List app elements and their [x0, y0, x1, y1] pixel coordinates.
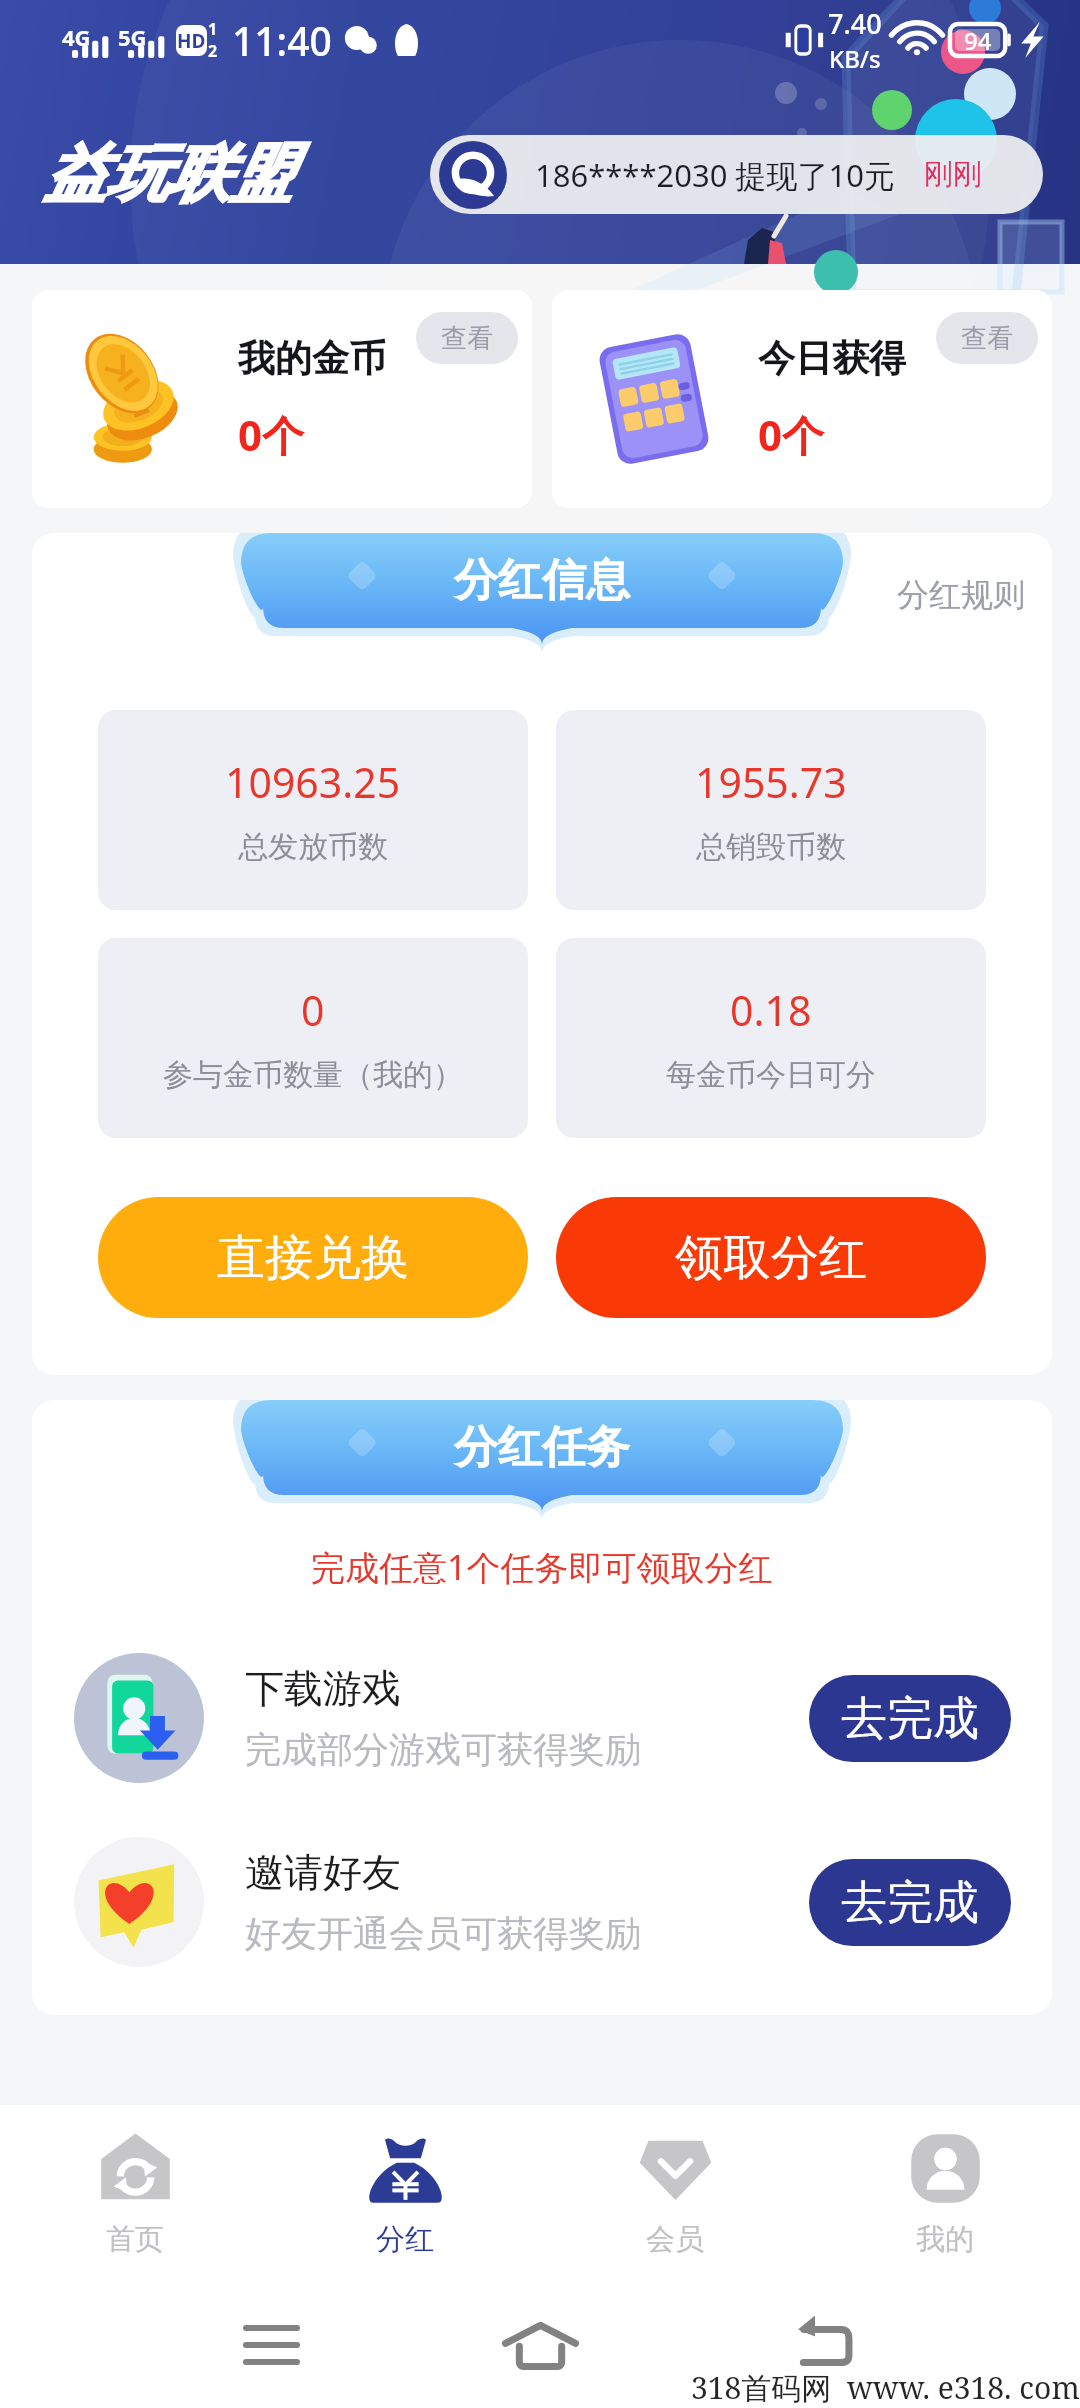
- staticText: 每金币今日可分: [666, 1056, 876, 1094]
- staticText: 去完成: [841, 1690, 979, 1748]
- staticText: 今日获得: [758, 335, 906, 382]
- button[interactable]: 今日获得: [552, 290, 1052, 508]
- staticText: 0个: [758, 406, 825, 463]
- staticText: 总销毁币数: [696, 828, 846, 866]
- other: Recent apps: [246, 2325, 297, 2365]
- staticText: 我的: [916, 2221, 974, 2258]
- staticText: 完成部分游戏可获得奖励: [245, 1727, 641, 1772]
- staticText: 0: [301, 982, 325, 1038]
- button[interactable]: 会员: [540, 2105, 810, 2280]
- staticText: 领取分红: [675, 1228, 867, 1288]
- staticText: 首页: [106, 2221, 164, 2258]
- staticText: 刚刚: [924, 156, 982, 193]
- button[interactable]: 186****2030 提现了10元: [430, 135, 1043, 214]
- staticText: 分红: [376, 2221, 434, 2258]
- button[interactable]: 领取分红: [556, 1197, 986, 1318]
- staticText: 0.18: [730, 982, 812, 1038]
- staticText: 我的金币: [238, 335, 386, 382]
- staticText: 分红任务: [454, 1420, 630, 1475]
- staticText: 分红规则: [897, 575, 1025, 615]
- button[interactable]: 分红规则: [897, 575, 1025, 615]
- staticText: 5G: [118, 22, 147, 52]
- staticText: 94: [964, 24, 992, 56]
- staticText: 2: [208, 40, 218, 62]
- button[interactable]: 去完成: [809, 1859, 1011, 1946]
- other: Home: [504, 2324, 577, 2367]
- staticText: 益玩联盟: [44, 135, 292, 213]
- staticText: 邀请好友: [245, 1848, 401, 1897]
- button[interactable]: 我的: [810, 2105, 1080, 2280]
- staticText: 分红信息: [454, 553, 630, 608]
- staticText: 参与金币数量（我的）: [163, 1056, 463, 1094]
- staticText: 总发放币数: [238, 828, 388, 866]
- button[interactable]: 直接兑换: [98, 1197, 528, 1318]
- staticText: 下载游戏: [245, 1664, 401, 1713]
- staticText: 7.40: [828, 5, 882, 42]
- button[interactable]: 我的金币: [32, 290, 532, 508]
- staticText: 查看: [961, 322, 1013, 355]
- staticText: 1: [208, 18, 218, 40]
- staticText: KB/s: [829, 42, 881, 75]
- button[interactable]: 去完成: [809, 1675, 1011, 1762]
- staticText: 10963.25: [225, 754, 401, 810]
- button[interactable]: 查看: [416, 312, 518, 364]
- staticText: 4G: [62, 22, 91, 52]
- staticText: 好友开通会员可获得奖励: [245, 1911, 641, 1956]
- other: Back: [797, 2322, 850, 2366]
- button[interactable]: 查看: [936, 312, 1038, 364]
- staticText: 完成任意1个任务即可领取分红: [311, 1544, 773, 1590]
- staticText: 0个: [238, 406, 305, 463]
- staticText: 318首码网 www. e318. com: [691, 2367, 1080, 2408]
- staticText: 去完成: [841, 1874, 979, 1932]
- staticText: HD: [177, 28, 206, 54]
- button[interactable]: 首页: [0, 2105, 270, 2280]
- staticText: 查看: [441, 322, 493, 355]
- staticText: 直接兑换: [217, 1228, 409, 1288]
- button[interactable]: 分红: [270, 2105, 540, 2280]
- staticText: 11:40: [232, 14, 332, 67]
- staticText: 会员: [646, 2221, 704, 2258]
- staticText: 186****2030 提现了10元: [535, 154, 895, 196]
- staticText: 1955.73: [695, 754, 847, 810]
